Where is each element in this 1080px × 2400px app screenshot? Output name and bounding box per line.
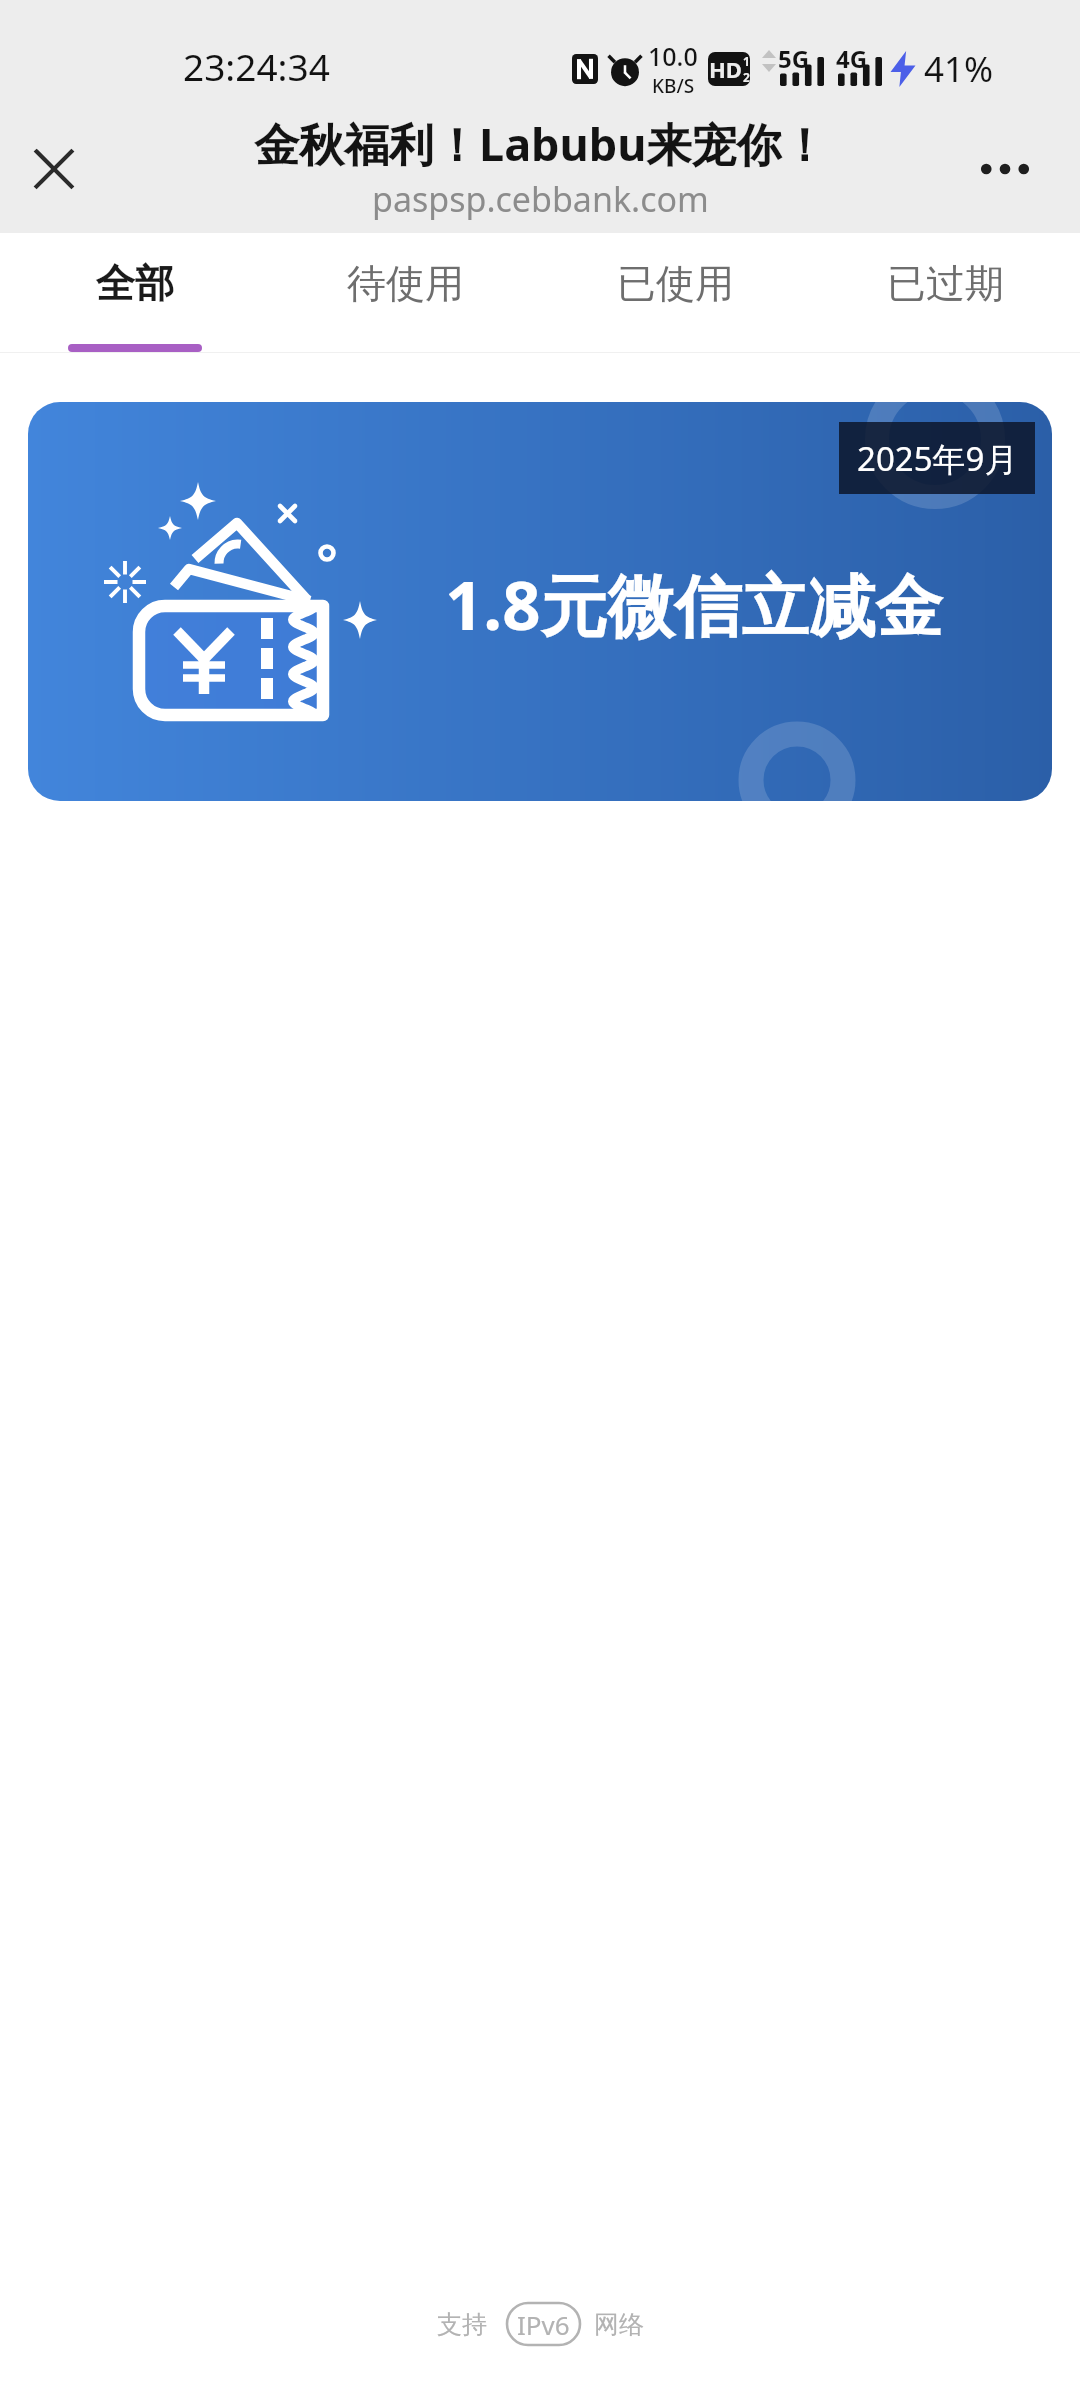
- staticText: 金秋福利！Labubu来宠你！: [254, 113, 827, 174]
- button[interactable]: 已过期: [810, 233, 1080, 353]
- staticText: 全部: [96, 259, 174, 308]
- staticText: 41%: [924, 45, 994, 93]
- staticText: 5G: [778, 42, 810, 75]
- staticText: 1: [743, 53, 750, 69]
- staticText: 10.0: [648, 39, 698, 73]
- button[interactable]: More options: [969, 133, 1041, 205]
- staticText: 2: [743, 69, 750, 85]
- button[interactable]: 全部: [0, 233, 270, 353]
- button[interactable]: Close: [18, 133, 90, 205]
- button[interactable]: 待使用: [270, 233, 540, 353]
- staticText: KB/S: [652, 73, 695, 99]
- staticText: 1.8元微信立减金: [445, 558, 943, 650]
- staticText: 待使用: [347, 259, 464, 308]
- staticText: paspsp.cebbank.com: [372, 176, 709, 222]
- staticText: 支持: [437, 2309, 487, 2340]
- button[interactable]: 已使用: [540, 233, 810, 353]
- staticText: HD: [709, 54, 742, 84]
- staticText: 网络: [594, 2309, 644, 2340]
- staticText: 2025年9月: [857, 436, 1018, 481]
- button[interactable]: 2025年9月: [28, 402, 1052, 801]
- staticText: 23:24:34: [183, 41, 330, 91]
- staticText: 已过期: [887, 259, 1004, 308]
- staticText: 4G: [836, 42, 868, 75]
- staticText: 已使用: [617, 259, 734, 308]
- staticText: IPv6: [517, 2307, 570, 2342]
